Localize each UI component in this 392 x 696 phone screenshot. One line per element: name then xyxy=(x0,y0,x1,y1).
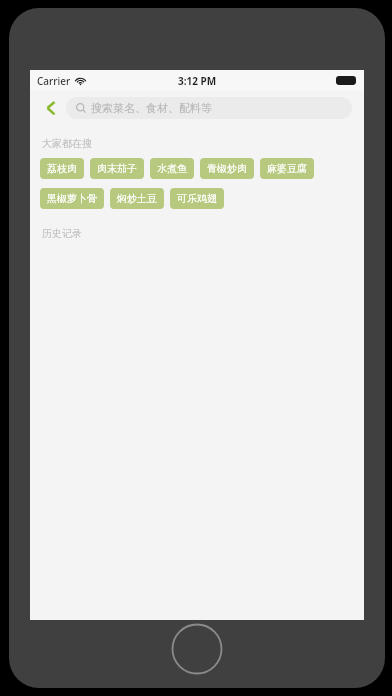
staticText: Carrier xyxy=(37,74,71,88)
staticText: 历史记录 xyxy=(42,227,82,240)
staticText: 麻婆豆腐 xyxy=(267,162,307,175)
staticText: 焖炒土豆 xyxy=(117,192,157,205)
button[interactable]: 黑椒萝卜骨 xyxy=(40,188,104,209)
staticText: 大家都在搜 xyxy=(42,137,92,150)
button[interactable]: 麻婆豆腐 xyxy=(260,158,314,179)
staticText: 荔枝肉 xyxy=(47,162,77,175)
staticText: 可乐鸡翅 xyxy=(177,192,217,205)
staticText: 黑椒萝卜骨 xyxy=(47,192,97,205)
button[interactable]: 肉末茄子 xyxy=(90,158,144,179)
button[interactable]: 焖炒土豆 xyxy=(110,188,164,209)
button[interactable]: 青椒炒肉 xyxy=(200,158,254,179)
staticText: 3:12 PM xyxy=(178,74,217,88)
staticText: 水煮鱼 xyxy=(157,162,187,175)
button[interactable]: 搜索菜名、食材、配料等 xyxy=(66,97,352,119)
button[interactable]: 荔枝肉 xyxy=(40,158,84,179)
button[interactable]: 可乐鸡翅 xyxy=(170,188,224,209)
button[interactable]: Home xyxy=(171,623,223,675)
staticText: 青椒炒肉 xyxy=(207,162,247,175)
button[interactable]: 水煮鱼 xyxy=(150,158,194,179)
staticText: 搜索菜名、食材、配料等 xyxy=(91,101,212,115)
staticText: 肉末茄子 xyxy=(97,162,137,175)
button[interactable]: Back xyxy=(38,95,64,121)
